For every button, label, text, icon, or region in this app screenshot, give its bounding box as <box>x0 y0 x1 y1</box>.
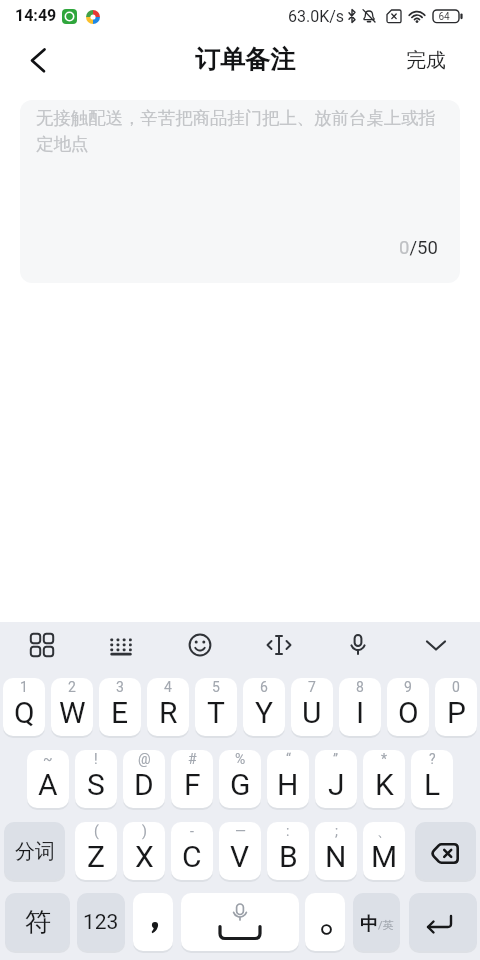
staticText: 4 <box>164 679 172 695</box>
button[interactable]: 3 <box>99 678 141 736</box>
staticText: Y <box>255 695 274 730</box>
staticText: “ <box>286 751 291 767</box>
button[interactable]: 4 <box>147 678 189 736</box>
staticText: 14:49 <box>15 6 57 25</box>
staticText: - <box>190 823 194 839</box>
button[interactable] <box>105 629 137 661</box>
staticText: 完成 <box>406 48 446 73</box>
staticText: U <box>302 695 322 730</box>
staticText: @ <box>138 751 151 767</box>
staticText: M <box>371 839 398 874</box>
staticText: F <box>184 767 201 802</box>
button[interactable]: % <box>219 750 261 808</box>
staticText: D <box>134 767 154 802</box>
button[interactable]: ” <box>315 750 357 808</box>
staticText: B <box>279 839 298 874</box>
staticText: 0 <box>452 679 460 695</box>
staticText: 1 <box>20 679 28 695</box>
button[interactable]: 5 <box>195 678 237 736</box>
staticText: ( <box>94 823 99 839</box>
staticText: 8 <box>356 679 364 695</box>
button[interactable] <box>26 629 58 661</box>
staticText: 123 <box>83 910 119 935</box>
button[interactable]: ! <box>75 750 117 808</box>
button[interactable] <box>181 893 299 951</box>
staticText: Z <box>87 839 105 874</box>
button[interactable]: ) <box>123 822 165 880</box>
button[interactable]: 0 <box>435 678 477 736</box>
staticText: H <box>277 767 299 802</box>
button[interactable]: 完成 <box>398 44 454 76</box>
staticText: 2 <box>68 679 76 695</box>
button[interactable] <box>263 629 295 661</box>
button[interactable] <box>184 629 216 661</box>
button[interactable]: @ <box>123 750 165 808</box>
button[interactable]: # <box>171 750 213 808</box>
staticText: J <box>328 767 345 802</box>
staticText: 6 <box>260 679 268 695</box>
button[interactable]: ~ <box>27 750 69 808</box>
button[interactable]: - <box>171 822 213 880</box>
button[interactable] <box>342 629 374 661</box>
staticText: 无接触配送，辛苦把商品挂门把上、放前台桌上或指 定地点 <box>36 107 460 167</box>
staticText: * <box>381 751 388 767</box>
staticText: V <box>230 839 250 874</box>
staticText: 符 <box>25 906 51 939</box>
button[interactable]: 、 <box>363 822 405 880</box>
staticText: 64 <box>431 11 457 23</box>
staticText: S <box>87 767 105 802</box>
staticText: 7 <box>308 679 316 695</box>
button[interactable]: — <box>219 822 261 880</box>
button[interactable] <box>420 629 452 661</box>
staticText: ” <box>333 751 339 767</box>
button[interactable]: 8 <box>339 678 381 736</box>
staticText: W <box>59 695 86 730</box>
button[interactable]: “ <box>267 750 309 808</box>
staticText: 9 <box>404 679 412 695</box>
staticText: ! <box>94 751 98 767</box>
staticText: E <box>111 695 129 730</box>
staticText: : <box>286 823 290 839</box>
staticText: T <box>207 695 225 730</box>
button[interactable]: 123 <box>77 893 125 951</box>
button[interactable]: 1 <box>3 678 45 736</box>
staticText: G <box>230 767 251 802</box>
staticText: 分词 <box>15 839 55 864</box>
staticText: 5 <box>212 679 220 695</box>
staticText: X <box>135 839 154 874</box>
staticText: ) <box>142 823 147 839</box>
staticText: 0/50 <box>399 237 438 259</box>
button[interactable]: 符 <box>5 893 70 951</box>
staticText: # <box>188 751 197 767</box>
button[interactable]: 9 <box>387 678 429 736</box>
staticText: % <box>235 751 246 767</box>
button[interactable]: : <box>267 822 309 880</box>
staticText: 、 <box>377 823 391 841</box>
staticText: — <box>235 823 246 839</box>
button[interactable] <box>305 893 345 951</box>
staticText: C <box>182 839 202 874</box>
button[interactable]: 7 <box>291 678 333 736</box>
button[interactable]: * <box>363 750 405 808</box>
button[interactable]: 2 <box>51 678 93 736</box>
button[interactable]: ; <box>315 822 357 880</box>
staticText: 63.0K/s <box>288 7 345 26</box>
button[interactable] <box>16 42 52 78</box>
button[interactable]: 6 <box>243 678 285 736</box>
button[interactable] <box>409 893 477 951</box>
button[interactable] <box>133 893 173 951</box>
staticText: 中 <box>360 913 378 936</box>
button[interactable]: 无接触配送，辛苦把商品挂门把上、放前台桌上或指 定地点 <box>20 100 460 283</box>
button[interactable] <box>415 822 476 880</box>
button[interactable]: 分词 <box>4 822 65 880</box>
staticText: R <box>159 695 178 730</box>
staticText: ; <box>335 823 338 839</box>
staticText: 订单备注 <box>5 44 480 75</box>
staticText: A <box>38 767 58 802</box>
staticText: L <box>424 767 441 802</box>
button[interactable]: 中 <box>353 893 400 951</box>
button[interactable]: ( <box>75 822 117 880</box>
button[interactable]: ? <box>411 750 453 808</box>
staticText: P <box>447 695 466 730</box>
staticText: ? <box>429 751 436 767</box>
